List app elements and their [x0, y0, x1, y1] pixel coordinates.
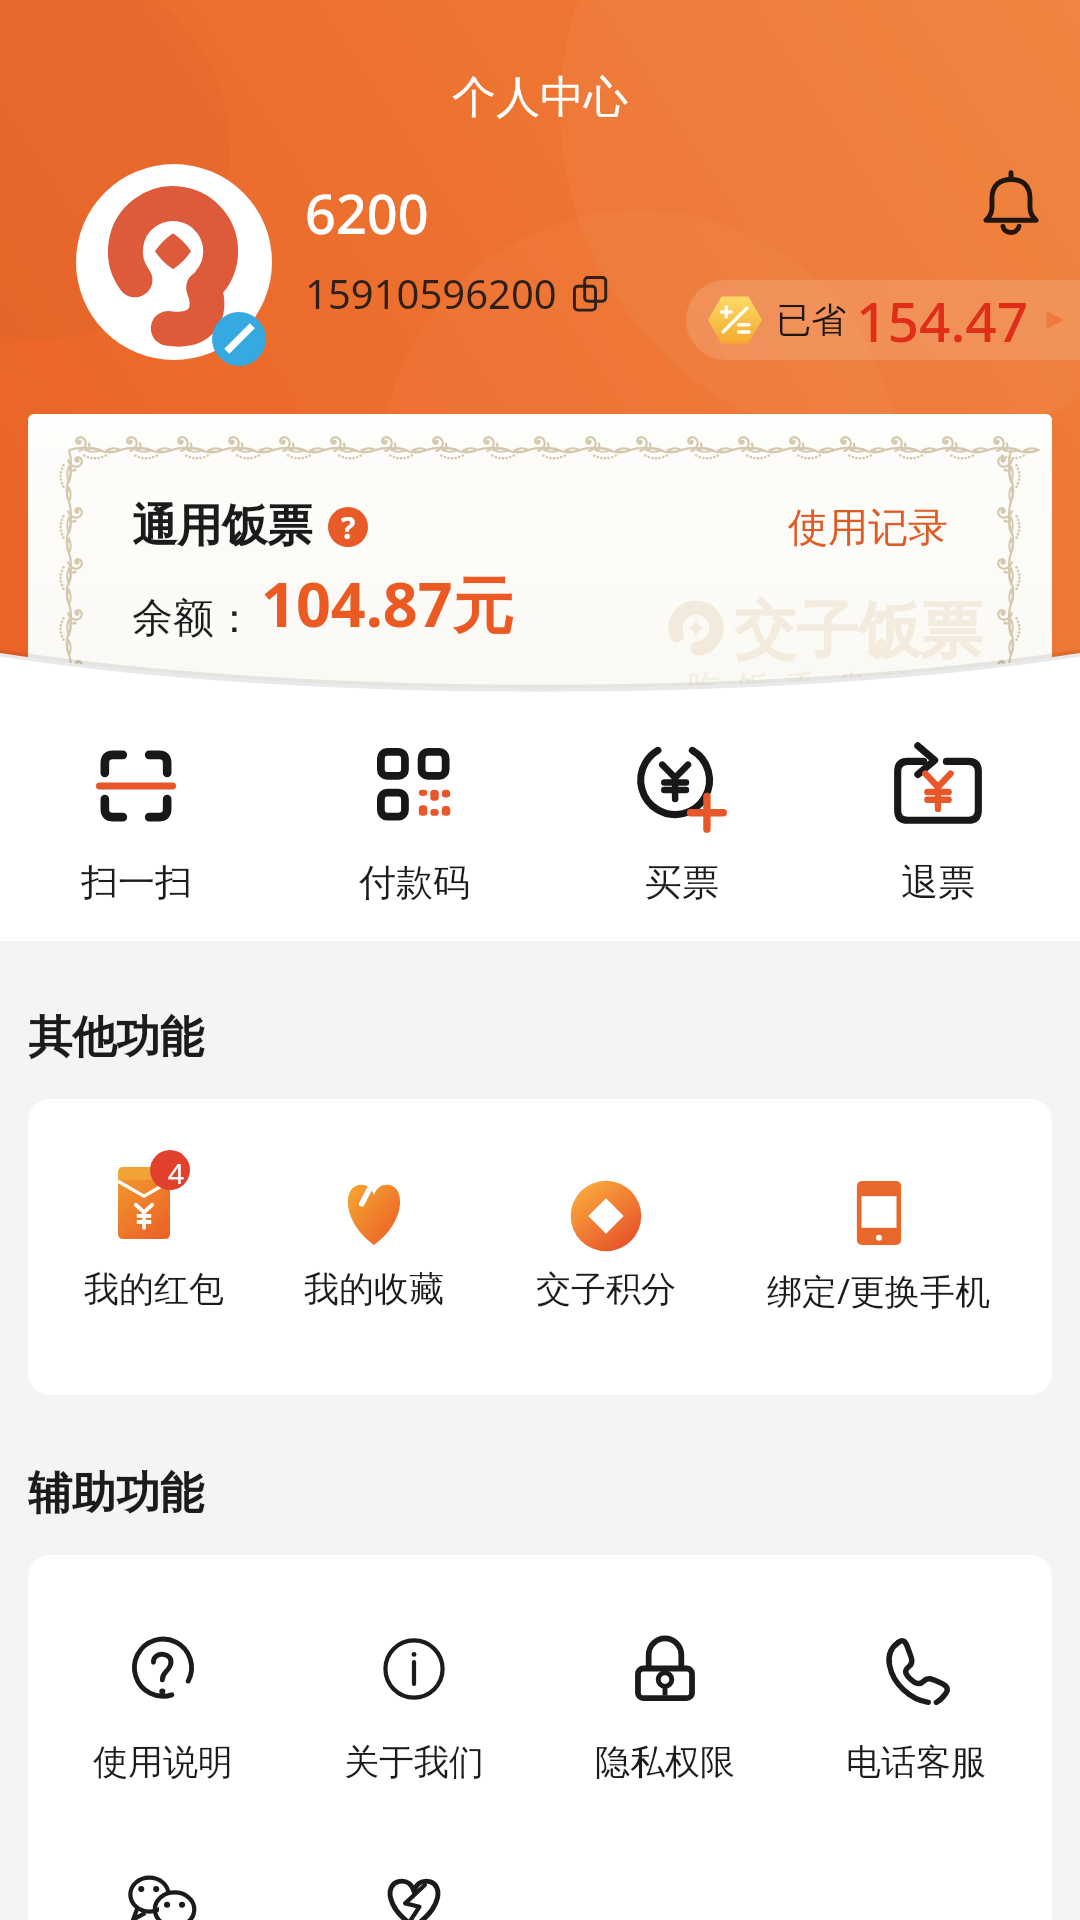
staticText: 隐私权限 — [595, 1740, 735, 1784]
staticText: 余额： — [132, 593, 255, 645]
staticText: 4 — [168, 1154, 185, 1192]
staticText: 买票 — [645, 859, 719, 906]
staticText: ? — [341, 507, 356, 547]
staticText: 使用说明 — [93, 1740, 233, 1784]
button[interactable]: 我的收藏 — [234, 1099, 514, 1395]
staticText: 付款码 — [359, 859, 470, 906]
staticText: 其他功能 — [28, 1010, 204, 1065]
button[interactable]: 关于我们 — [289, 1635, 539, 1784]
button[interactable]: 已省 — [686, 280, 1080, 360]
staticText: 15910596200 — [305, 266, 557, 320]
staticText: 154.47 — [856, 283, 1029, 358]
button[interactable]: Notifications — [977, 170, 1045, 238]
staticText: 吃 饭 丢 省 钱 — [688, 664, 915, 708]
staticText: 扫一扫 — [81, 859, 192, 906]
button[interactable]: 交子饭票 — [28, 414, 1052, 754]
staticText: 104.87元 — [261, 562, 514, 645]
staticText: 关于我们 — [344, 1740, 484, 1784]
button[interactable]: Help — [328, 507, 368, 547]
staticText: 已省 — [776, 298, 846, 342]
button[interactable]: Profile avatar — [76, 164, 272, 360]
button[interactable]: 在线客服 — [289, 1868, 539, 1920]
button[interactable]: Edit profile — [212, 312, 266, 366]
button[interactable]: 使用记录 — [788, 502, 948, 552]
button[interactable]: 15910596200 — [305, 266, 607, 320]
button[interactable]: 绑定/更换手机 — [739, 1099, 1019, 1395]
button[interactable]: 微信客服 — [38, 1868, 288, 1920]
staticText: 退票 — [901, 859, 975, 906]
staticText: 我的收藏 — [304, 1267, 444, 1311]
button[interactable]: 使用说明 — [38, 1635, 288, 1784]
button[interactable]: 退票 — [833, 720, 1043, 920]
button[interactable]: 4 — [28, 1099, 294, 1395]
staticText: 通用饭票 — [132, 498, 312, 555]
button[interactable]: 隐私权限 — [540, 1635, 790, 1784]
staticText: 辅助功能 — [28, 1466, 204, 1521]
button[interactable]: 买票 — [577, 720, 787, 920]
button[interactable]: 交子积分 — [466, 1099, 746, 1395]
staticText: 电话客服 — [846, 1740, 986, 1784]
staticText: 个人中心 — [452, 70, 628, 125]
staticText: 交子饭票 — [734, 592, 982, 670]
button[interactable]: 扫一扫 — [31, 720, 241, 920]
staticText: 绑定/更换手机 — [767, 1267, 991, 1315]
button[interactable]: 电话客服 — [791, 1635, 1041, 1784]
staticText: 交子积分 — [536, 1267, 676, 1311]
staticText: 6200 — [305, 176, 429, 250]
button[interactable]: 付款码 — [309, 720, 519, 920]
other: Copy phone number — [573, 276, 607, 310]
staticText: 我的红包 — [84, 1267, 224, 1311]
